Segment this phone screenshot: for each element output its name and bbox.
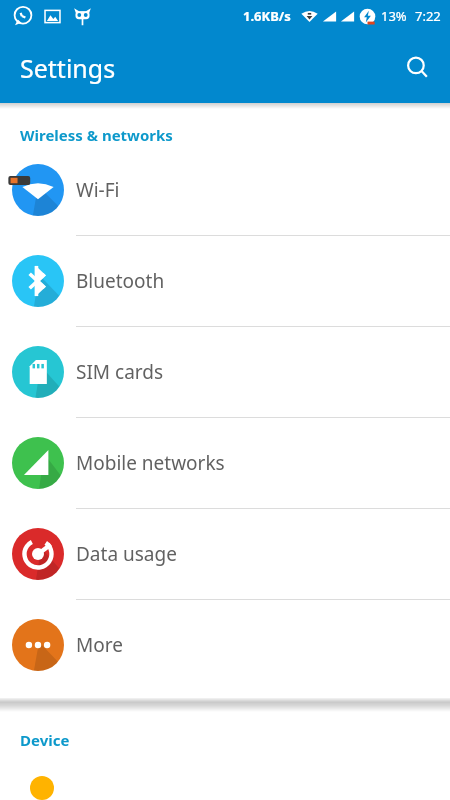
button[interactable]: Data usage <box>0 509 450 600</box>
staticText: Settings <box>20 51 116 85</box>
staticText: 13% <box>381 7 407 25</box>
button[interactable]: Wi-Fi <box>0 145 450 236</box>
staticText: Bluetooth <box>76 268 165 294</box>
button[interactable]: SIM cards <box>0 327 450 418</box>
button[interactable]: More <box>0 600 450 690</box>
staticText: Wi-Fi <box>76 177 120 203</box>
staticText: Data usage <box>76 541 177 567</box>
button[interactable] <box>0 776 450 800</box>
button[interactable]: Mobile networks <box>0 418 450 509</box>
staticText: Mobile networks <box>76 450 225 476</box>
button[interactable]: Bluetooth <box>0 236 450 327</box>
staticText: 7:22 <box>415 7 441 25</box>
staticText: Device <box>20 730 70 750</box>
staticText: Wireless & networks <box>20 125 173 145</box>
button[interactable]: Search <box>394 44 442 92</box>
staticText: More <box>76 632 123 658</box>
staticText: 1.6KB/s <box>243 7 291 25</box>
staticText: SIM cards <box>76 359 164 385</box>
